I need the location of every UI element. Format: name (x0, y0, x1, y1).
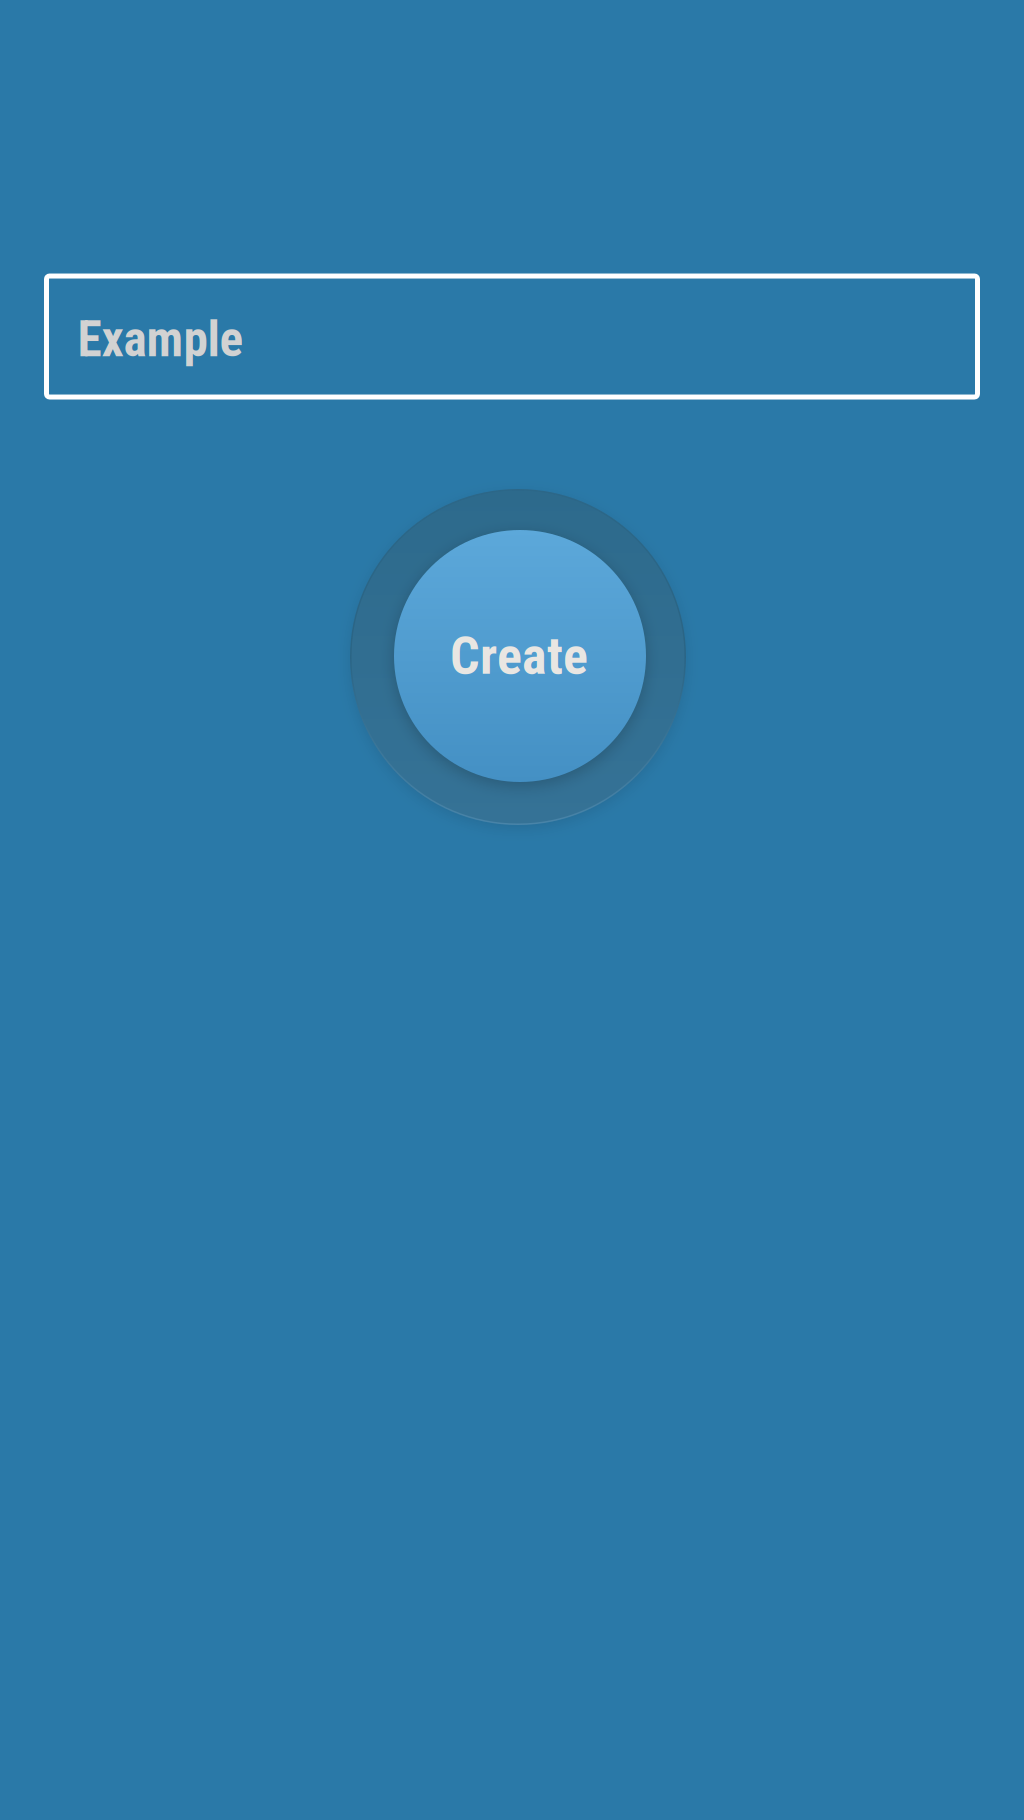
button[interactable]: Create (350, 489, 686, 825)
staticText: Create (450, 625, 588, 686)
staticText: Example (77, 311, 243, 368)
button[interactable]: Example (46, 276, 977, 397)
